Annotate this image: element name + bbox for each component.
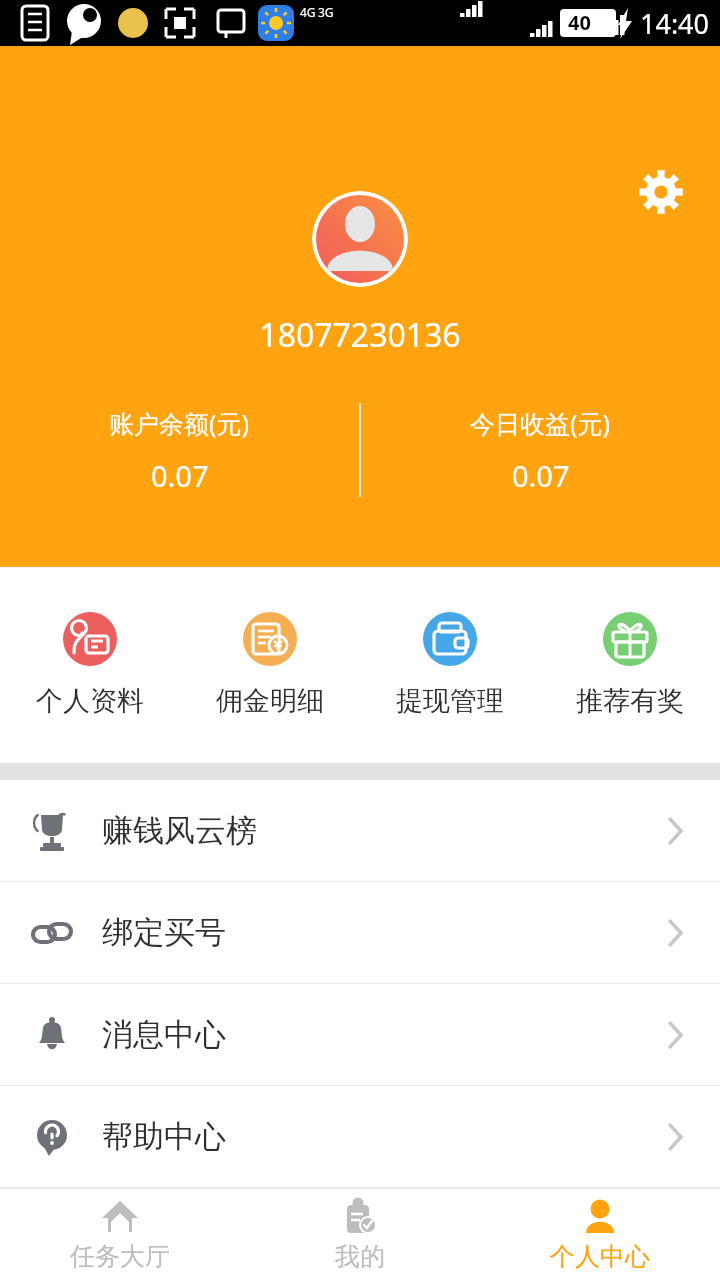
button[interactable]: 个人中心 xyxy=(480,1189,720,1280)
staticText: 提现管理 xyxy=(396,684,504,718)
staticText: 40 xyxy=(568,9,591,36)
button[interactable]: 推荐有奖 xyxy=(540,567,720,763)
button[interactable]: 赚钱风云榜 xyxy=(0,780,720,881)
staticText: 今日收益(元) xyxy=(470,406,611,440)
button[interactable]: 提现管理 xyxy=(360,567,540,763)
staticText: 个人中心 xyxy=(550,1241,650,1272)
staticText: 0.07 xyxy=(512,456,570,495)
staticText: 账户余额(元) xyxy=(109,406,250,440)
button[interactable]: 我的 xyxy=(240,1189,480,1280)
staticText: 绑定买号 xyxy=(102,913,226,952)
button[interactable]: 佣金明细 xyxy=(180,567,360,763)
button[interactable]: 帮助中心 xyxy=(0,1086,720,1187)
button[interactable]: 任务大厅 xyxy=(0,1189,240,1280)
button[interactable]: 绑定买号 xyxy=(0,882,720,983)
button[interactable]: 账户余额(元) xyxy=(0,395,359,505)
staticText: 赚钱风云榜 xyxy=(102,811,257,850)
staticText: 任务大厅 xyxy=(70,1241,170,1272)
staticText: 14:40 xyxy=(640,5,710,42)
staticText: 0.07 xyxy=(151,456,209,495)
staticText: 帮助中心 xyxy=(102,1117,226,1156)
button[interactable] xyxy=(312,191,408,287)
button[interactable]: Settings xyxy=(635,166,687,218)
button[interactable]: 个人资料 xyxy=(0,567,180,763)
staticText: 3G xyxy=(318,4,334,20)
staticText: 4G xyxy=(300,4,316,20)
staticText: 推荐有奖 xyxy=(576,684,684,718)
button[interactable]: 今日收益(元) xyxy=(361,395,720,505)
staticText: 18077230136 xyxy=(259,313,461,357)
staticText: 个人资料 xyxy=(36,684,144,718)
staticText: 我的 xyxy=(335,1241,385,1272)
staticText: 佣金明细 xyxy=(216,684,324,718)
staticText: 消息中心 xyxy=(102,1015,226,1054)
button[interactable]: 消息中心 xyxy=(0,984,720,1085)
